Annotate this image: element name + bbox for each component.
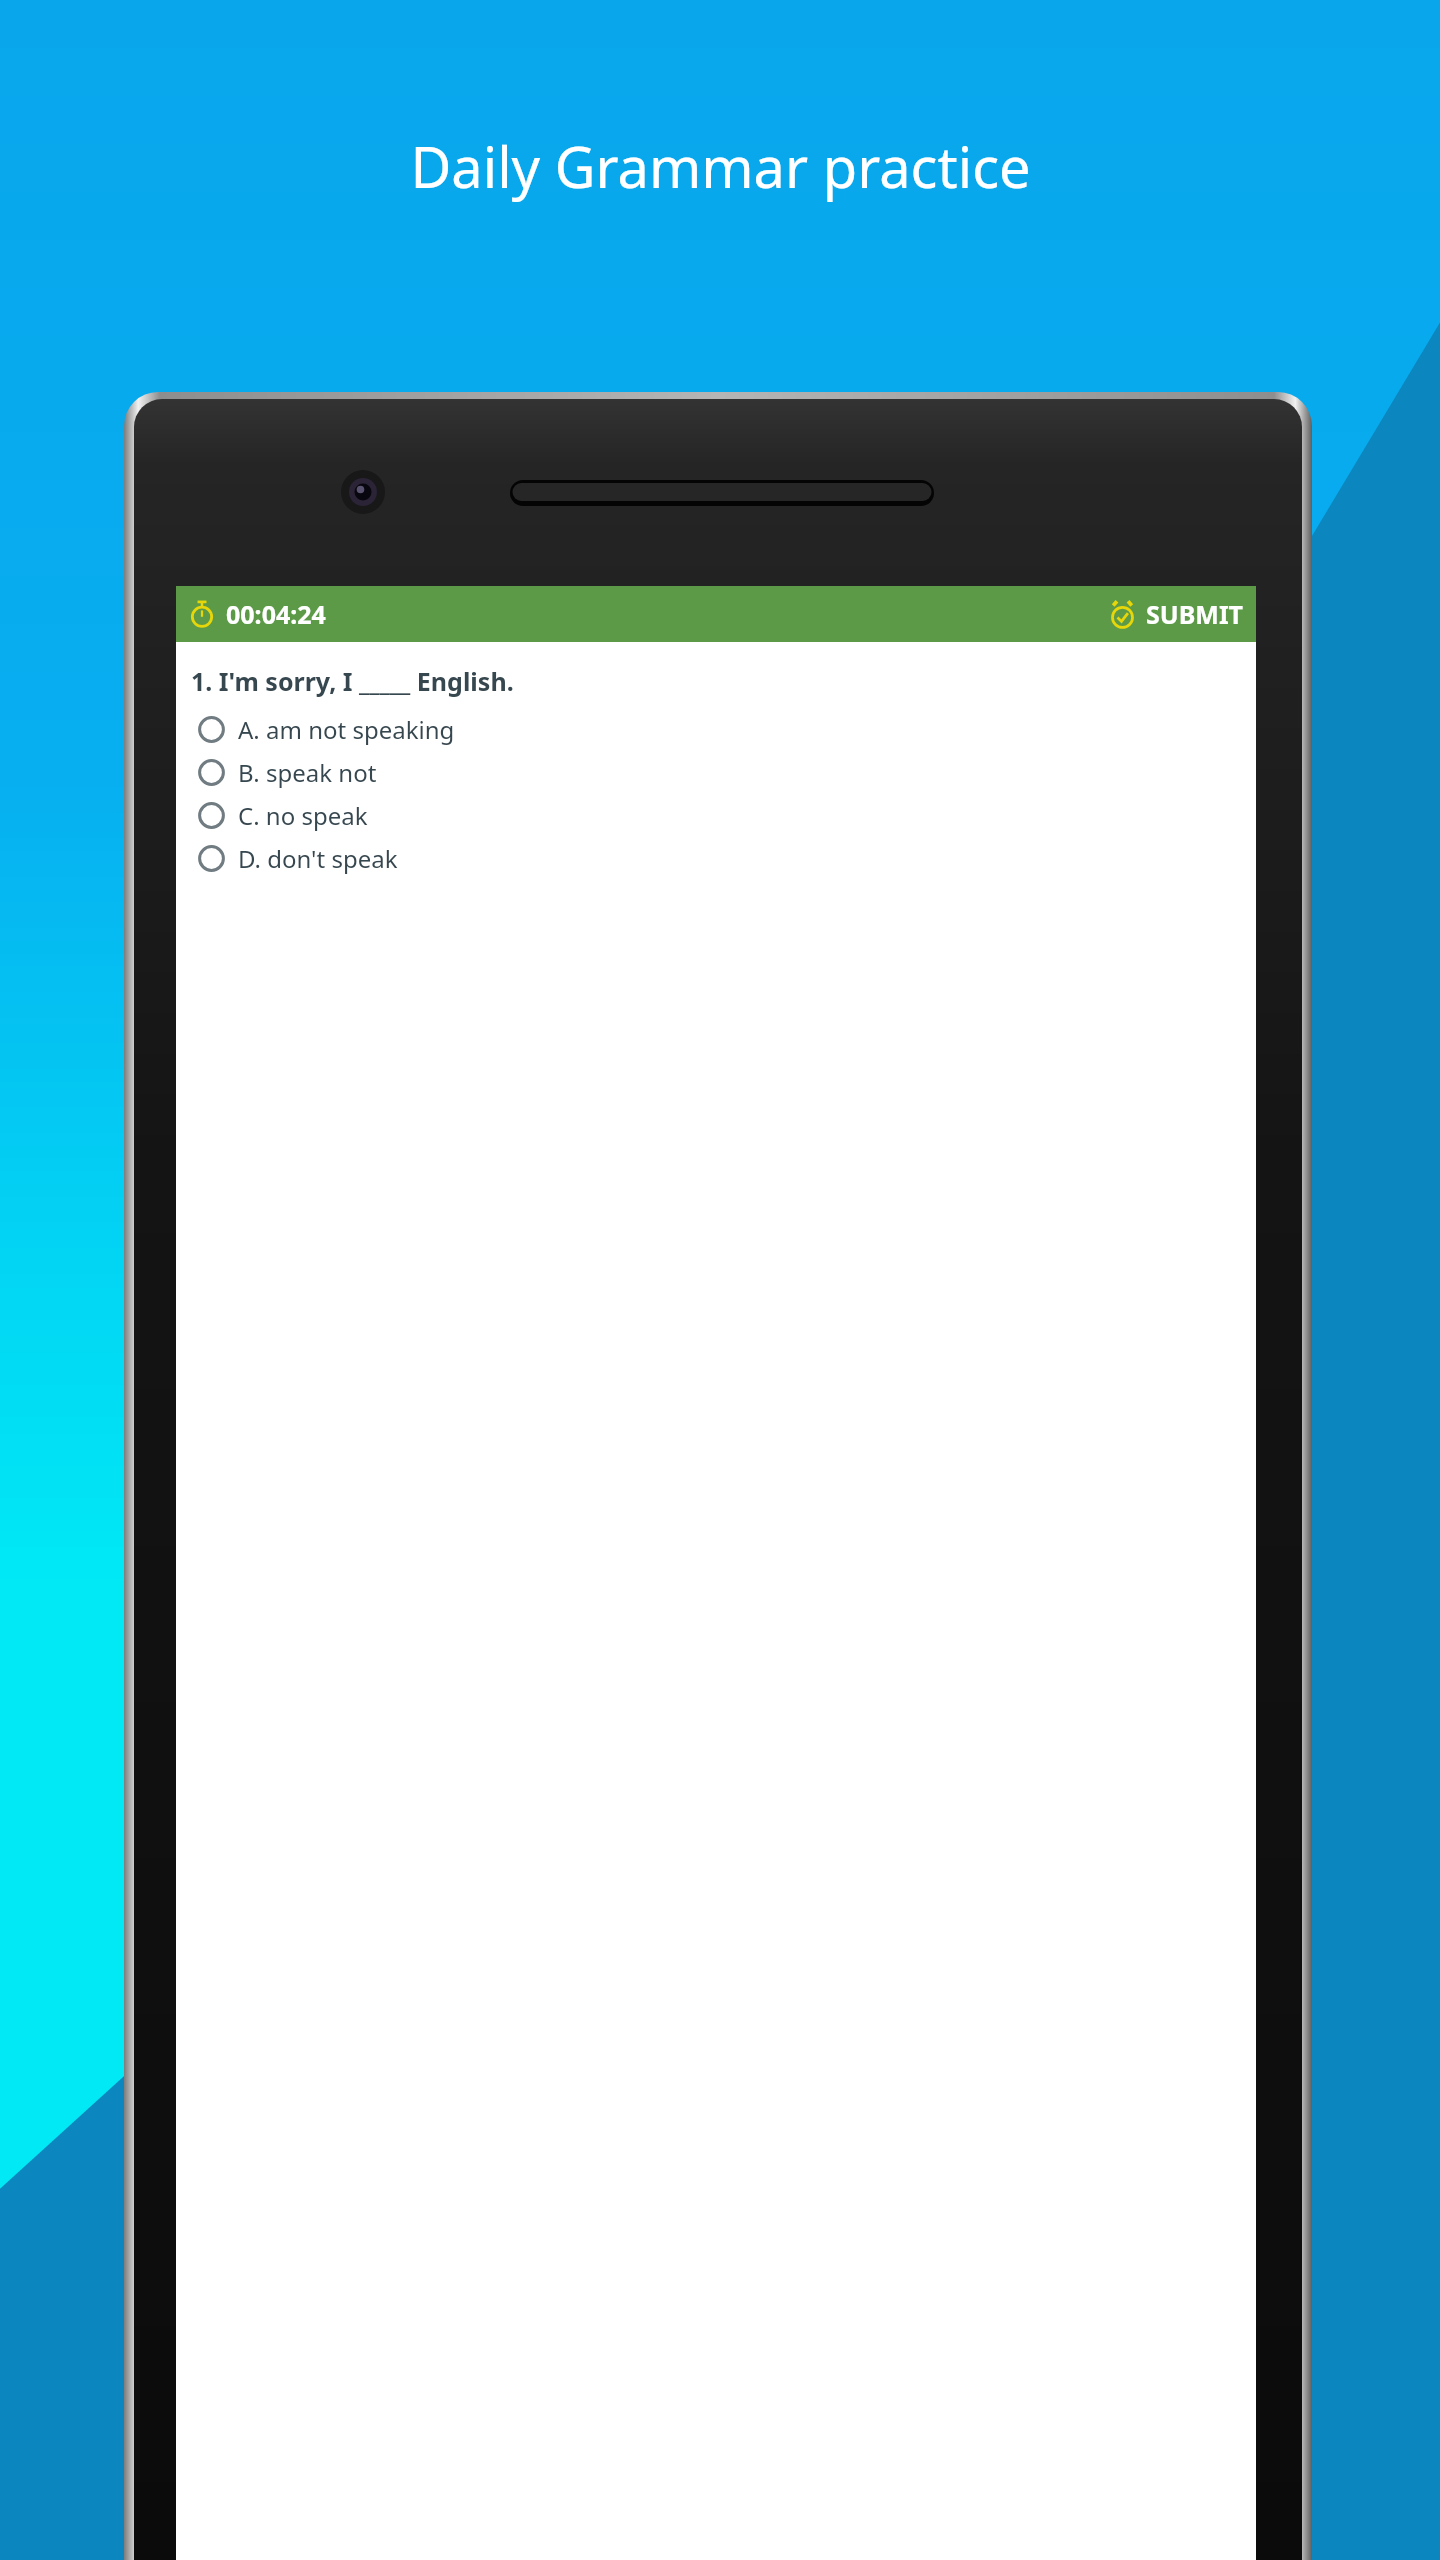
staticText: SUBMIT [1146,597,1244,631]
staticText: B. speak not [238,756,377,789]
button[interactable]: B. speak not [176,751,1256,794]
staticText: 1. I'm sorry, I _____ English. [191,664,514,698]
button[interactable]: C. no speak [176,794,1256,837]
staticText: Daily Grammar practice [410,128,1031,204]
staticText: A. am not speaking [238,713,455,746]
staticText: D. don't speak [238,842,398,875]
staticText: 00:04:24 [226,597,326,631]
button[interactable]: 00:04:24 [188,597,326,631]
button[interactable]: D. don't speak [176,837,1256,880]
staticText: C. no speak [238,799,368,832]
button[interactable]: Submit answers [1108,597,1244,631]
button[interactable]: A. am not speaking [176,708,1256,751]
